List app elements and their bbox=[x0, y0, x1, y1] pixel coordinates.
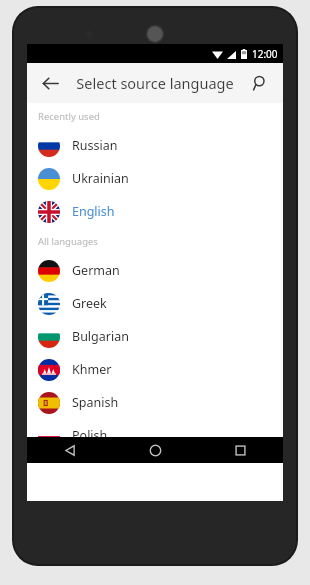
staticText: Recently used bbox=[38, 110, 100, 123]
staticText: English bbox=[72, 203, 115, 220]
button[interactable]: Spanish bbox=[27, 386, 283, 419]
button[interactable]: Polish bbox=[27, 419, 283, 452]
staticText: Ukrainian bbox=[72, 170, 129, 187]
staticText: Polish bbox=[72, 427, 108, 444]
staticText: Select source language bbox=[67, 73, 243, 93]
button[interactable]: Home bbox=[113, 437, 198, 463]
staticText: Greek bbox=[72, 295, 107, 312]
button[interactable]: Khmer bbox=[27, 353, 283, 386]
staticText: 12:00 bbox=[252, 47, 278, 61]
button[interactable]: Back bbox=[27, 437, 113, 463]
staticText: German bbox=[72, 262, 120, 279]
button[interactable]: Bulgarian bbox=[27, 320, 283, 353]
button[interactable]: Ukrainian bbox=[27, 162, 283, 195]
button[interactable]: Search bbox=[243, 66, 277, 100]
staticText: All languages bbox=[38, 235, 98, 248]
button[interactable]: Recent apps bbox=[198, 437, 283, 463]
staticText: Spanish bbox=[72, 394, 119, 411]
button[interactable]: English bbox=[27, 195, 283, 228]
button[interactable] bbox=[27, 452, 283, 460]
button[interactable]: Back bbox=[33, 66, 67, 100]
button[interactable]: Greek bbox=[27, 287, 283, 320]
staticText: Russian bbox=[72, 137, 118, 154]
staticText: Bulgarian bbox=[72, 328, 129, 345]
staticText: Khmer bbox=[72, 361, 112, 378]
button[interactable]: Russian bbox=[27, 129, 283, 162]
button[interactable]: German bbox=[27, 254, 283, 287]
